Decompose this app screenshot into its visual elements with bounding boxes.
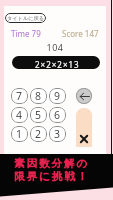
staticText: 6 [54, 108, 61, 122]
staticText: Score 147 [62, 28, 99, 39]
button[interactable]: 6 [49, 107, 66, 123]
staticText: 8 [35, 89, 42, 103]
button[interactable]: 1 [11, 126, 28, 142]
staticText: 2×2×2×13 [35, 59, 80, 69]
button[interactable]: 5 [30, 107, 47, 123]
staticText: 3 [54, 127, 61, 141]
button[interactable]: 8 [30, 88, 47, 104]
staticText: 素因数分解の [14, 157, 90, 170]
staticText: 4 [16, 108, 23, 122]
button[interactable]: Multiply [76, 108, 92, 147]
staticText: 7 [16, 89, 23, 103]
button[interactable]: 7 [11, 88, 28, 104]
staticText: 2 [35, 127, 42, 141]
staticText: 9 [54, 89, 61, 103]
button[interactable]: Backspace [76, 88, 92, 104]
button[interactable]: タイトルに戻る [5, 13, 46, 23]
button[interactable]: 2 [30, 126, 47, 142]
staticText: 104 [46, 41, 64, 53]
button[interactable]: 9 [49, 88, 66, 104]
staticText: タイトルに戻る [7, 15, 45, 22]
staticText: 5 [35, 108, 42, 122]
button[interactable]: 4 [11, 107, 28, 123]
staticText: 限界に挑戦！ [14, 170, 90, 183]
staticText: Time 79 [11, 28, 41, 39]
button[interactable]: 3 [49, 126, 66, 142]
staticText: 1 [16, 127, 23, 141]
